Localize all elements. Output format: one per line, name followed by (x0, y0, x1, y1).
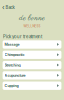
staticText: Pick your treatment (3, 34, 42, 39)
staticText: de bonne (19, 13, 45, 24)
staticText: Chiropractic (5, 53, 25, 57)
staticText: Massage (5, 42, 20, 47)
button[interactable]: ‹ (0, 5, 15, 10)
staticText: Stretching (5, 63, 21, 67)
staticText: Acupuncture (5, 73, 26, 78)
button[interactable]: Chiropractic (3, 51, 61, 59)
button[interactable]: Stretching (3, 61, 61, 69)
button[interactable]: Acupuncture (3, 71, 61, 80)
staticText: WELLNESS (23, 24, 40, 28)
staticText: Cupping (5, 83, 19, 88)
button[interactable]: Massage (3, 40, 61, 49)
button[interactable]: Cupping (3, 82, 61, 90)
staticText: ‹ (2, 3, 5, 12)
staticText: Back (6, 5, 15, 10)
